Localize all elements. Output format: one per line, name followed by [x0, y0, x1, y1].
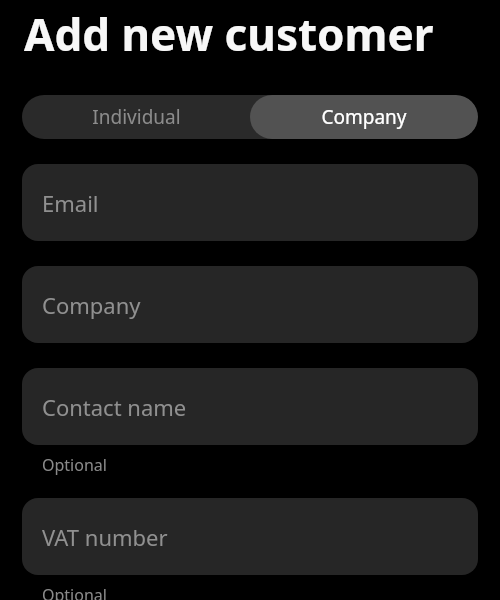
button[interactable]: VAT number — [22, 498, 478, 575]
button[interactable]: Contact name — [22, 368, 478, 445]
button[interactable]: Company — [22, 266, 478, 343]
button[interactable]: Individual — [22, 95, 250, 139]
button[interactable]: Email — [22, 164, 478, 241]
staticText: Individual — [92, 104, 181, 130]
staticText: Email — [42, 188, 99, 218]
staticText: VAT number — [42, 522, 168, 552]
staticText: Optional — [42, 584, 107, 600]
staticText: Optional — [42, 454, 107, 476]
button[interactable]: Company — [250, 95, 478, 139]
staticText: Add new customer — [24, 4, 434, 64]
staticText: Company — [321, 104, 407, 130]
staticText: Company — [42, 290, 141, 320]
staticText: Contact name — [42, 392, 187, 422]
